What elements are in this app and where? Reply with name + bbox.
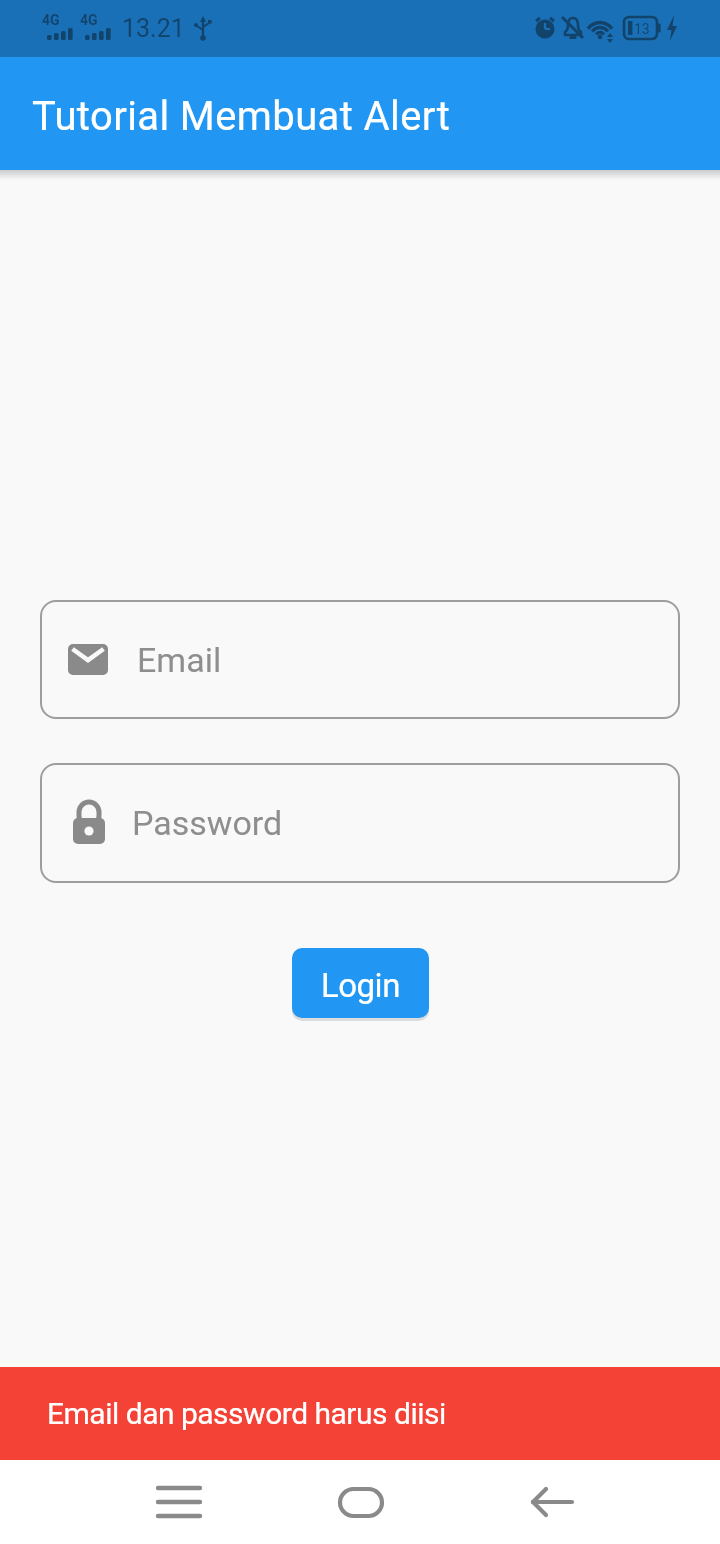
button[interactable]: Login [292,948,429,1018]
button[interactable] [301,1460,421,1544]
staticText: Email dan password harus diisi [47,1396,446,1431]
button[interactable] [492,1460,612,1544]
button[interactable] [119,1460,239,1544]
button[interactable]: Email [40,600,680,719]
staticText: 4G [80,12,98,28]
staticText: 13 [634,21,650,37]
button[interactable]: Password [40,763,680,883]
staticText: Login [321,966,400,1005]
staticText: 4G [42,12,60,28]
staticText: 13.21 [122,14,185,43]
staticText: Tutorial Membuat Alert [32,93,451,140]
staticText: Email [137,640,222,680]
staticText: Password [132,803,283,843]
